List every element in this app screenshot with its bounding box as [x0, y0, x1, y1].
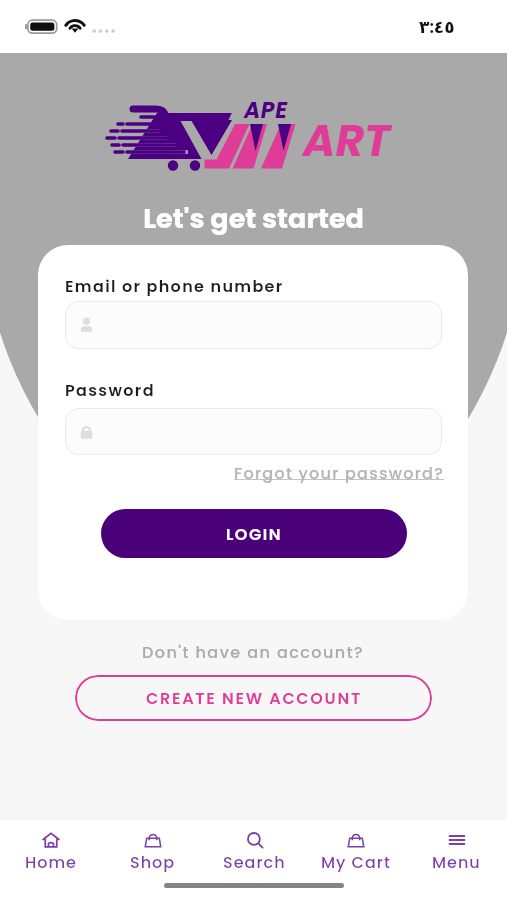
staticText: Don't have an account? [142, 641, 365, 663]
other: Password [79, 424, 94, 440]
button[interactable]: Search [204, 820, 305, 900]
button[interactable]: Shop [102, 820, 204, 900]
staticText: CREATE NEW ACCOUNT [146, 687, 362, 709]
button[interactable]: Home [0, 820, 102, 900]
staticText: Shop [130, 851, 176, 873]
staticText: ART [303, 110, 391, 172]
button[interactable]: Forgot your password? [234, 462, 445, 484]
staticText: Let's get started [0, 200, 507, 238]
button[interactable]: My Cart [305, 820, 406, 900]
button[interactable]: Password [65, 408, 442, 455]
staticText: LOGIN [226, 523, 282, 545]
button[interactable]: LOGIN [101, 509, 407, 558]
other: My Cart [347, 831, 365, 847]
staticText: Email or phone number [65, 275, 284, 297]
staticText: ٣:٤٥ [419, 15, 455, 39]
button[interactable]: CREATE NEW ACCOUNT [75, 675, 432, 721]
staticText: APE [244, 95, 288, 126]
other: Search [246, 831, 264, 847]
button[interactable]: User [65, 301, 442, 349]
other: Home [42, 831, 60, 847]
staticText: Password [65, 379, 155, 401]
staticText: My Cart [321, 851, 391, 873]
other: Menu [448, 831, 466, 847]
staticText: Search [223, 851, 286, 873]
staticText: Menu [432, 851, 481, 873]
other: Shop [144, 831, 162, 847]
other: User [79, 317, 94, 333]
staticText: Home [25, 851, 77, 873]
button[interactable]: Menu [406, 820, 507, 900]
